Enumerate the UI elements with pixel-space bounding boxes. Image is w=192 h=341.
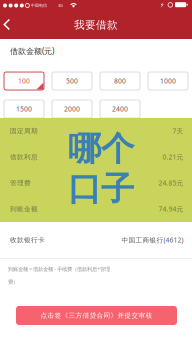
- staticText: 2400: [112, 105, 128, 113]
- button[interactable]: 2400: [100, 100, 140, 118]
- staticText: 费）: [8, 279, 18, 285]
- staticText: 到账金额 = 借款金额 - 手续费（借款利息+管理: [8, 265, 110, 273]
- staticText: 到账金额: [10, 205, 38, 213]
- staticText: 收款银行卡: [10, 236, 45, 244]
- staticText: 中国电信: [31, 3, 47, 8]
- staticText: 74.94元: [158, 205, 183, 213]
- staticText: 哪个: [68, 128, 134, 169]
- staticText: 3G: [58, 3, 63, 8]
- staticText: 中国工商银行(4612): [121, 236, 183, 244]
- button[interactable]: 收款银行卡: [10, 222, 183, 258]
- button[interactable]: 800: [100, 72, 140, 90]
- staticText: 800: [114, 77, 126, 85]
- staticText: 0.21元: [162, 153, 183, 161]
- staticText: 借款金额(元): [10, 46, 54, 56]
- staticText: 点击签《三方借贷合同》并提交审核: [40, 311, 152, 320]
- staticText: 口子: [68, 168, 134, 209]
- staticText: 1000: [160, 77, 176, 85]
- staticText: 固定周期: [10, 127, 38, 135]
- staticText: 100: [18, 77, 30, 85]
- button[interactable]: 点击签《三方借贷合同》并提交审核: [16, 306, 177, 325]
- staticText: 1500: [16, 105, 32, 113]
- button[interactable]: 1000: [148, 72, 188, 90]
- staticText: 我要借款: [74, 18, 118, 31]
- staticText: 24.85元: [158, 179, 183, 187]
- button[interactable]: 2000: [52, 100, 92, 118]
- staticText: 管理费: [10, 179, 31, 187]
- staticText: 2000: [64, 105, 80, 113]
- staticText: 500: [66, 77, 78, 85]
- button[interactable]: 1500: [4, 100, 44, 118]
- button[interactable]: 100: [4, 72, 44, 90]
- button[interactable]: 500: [52, 72, 92, 90]
- staticText: 7天: [172, 127, 183, 135]
- button[interactable]: Back: [0, 13, 22, 37]
- staticText: 借款利息: [10, 153, 38, 161]
